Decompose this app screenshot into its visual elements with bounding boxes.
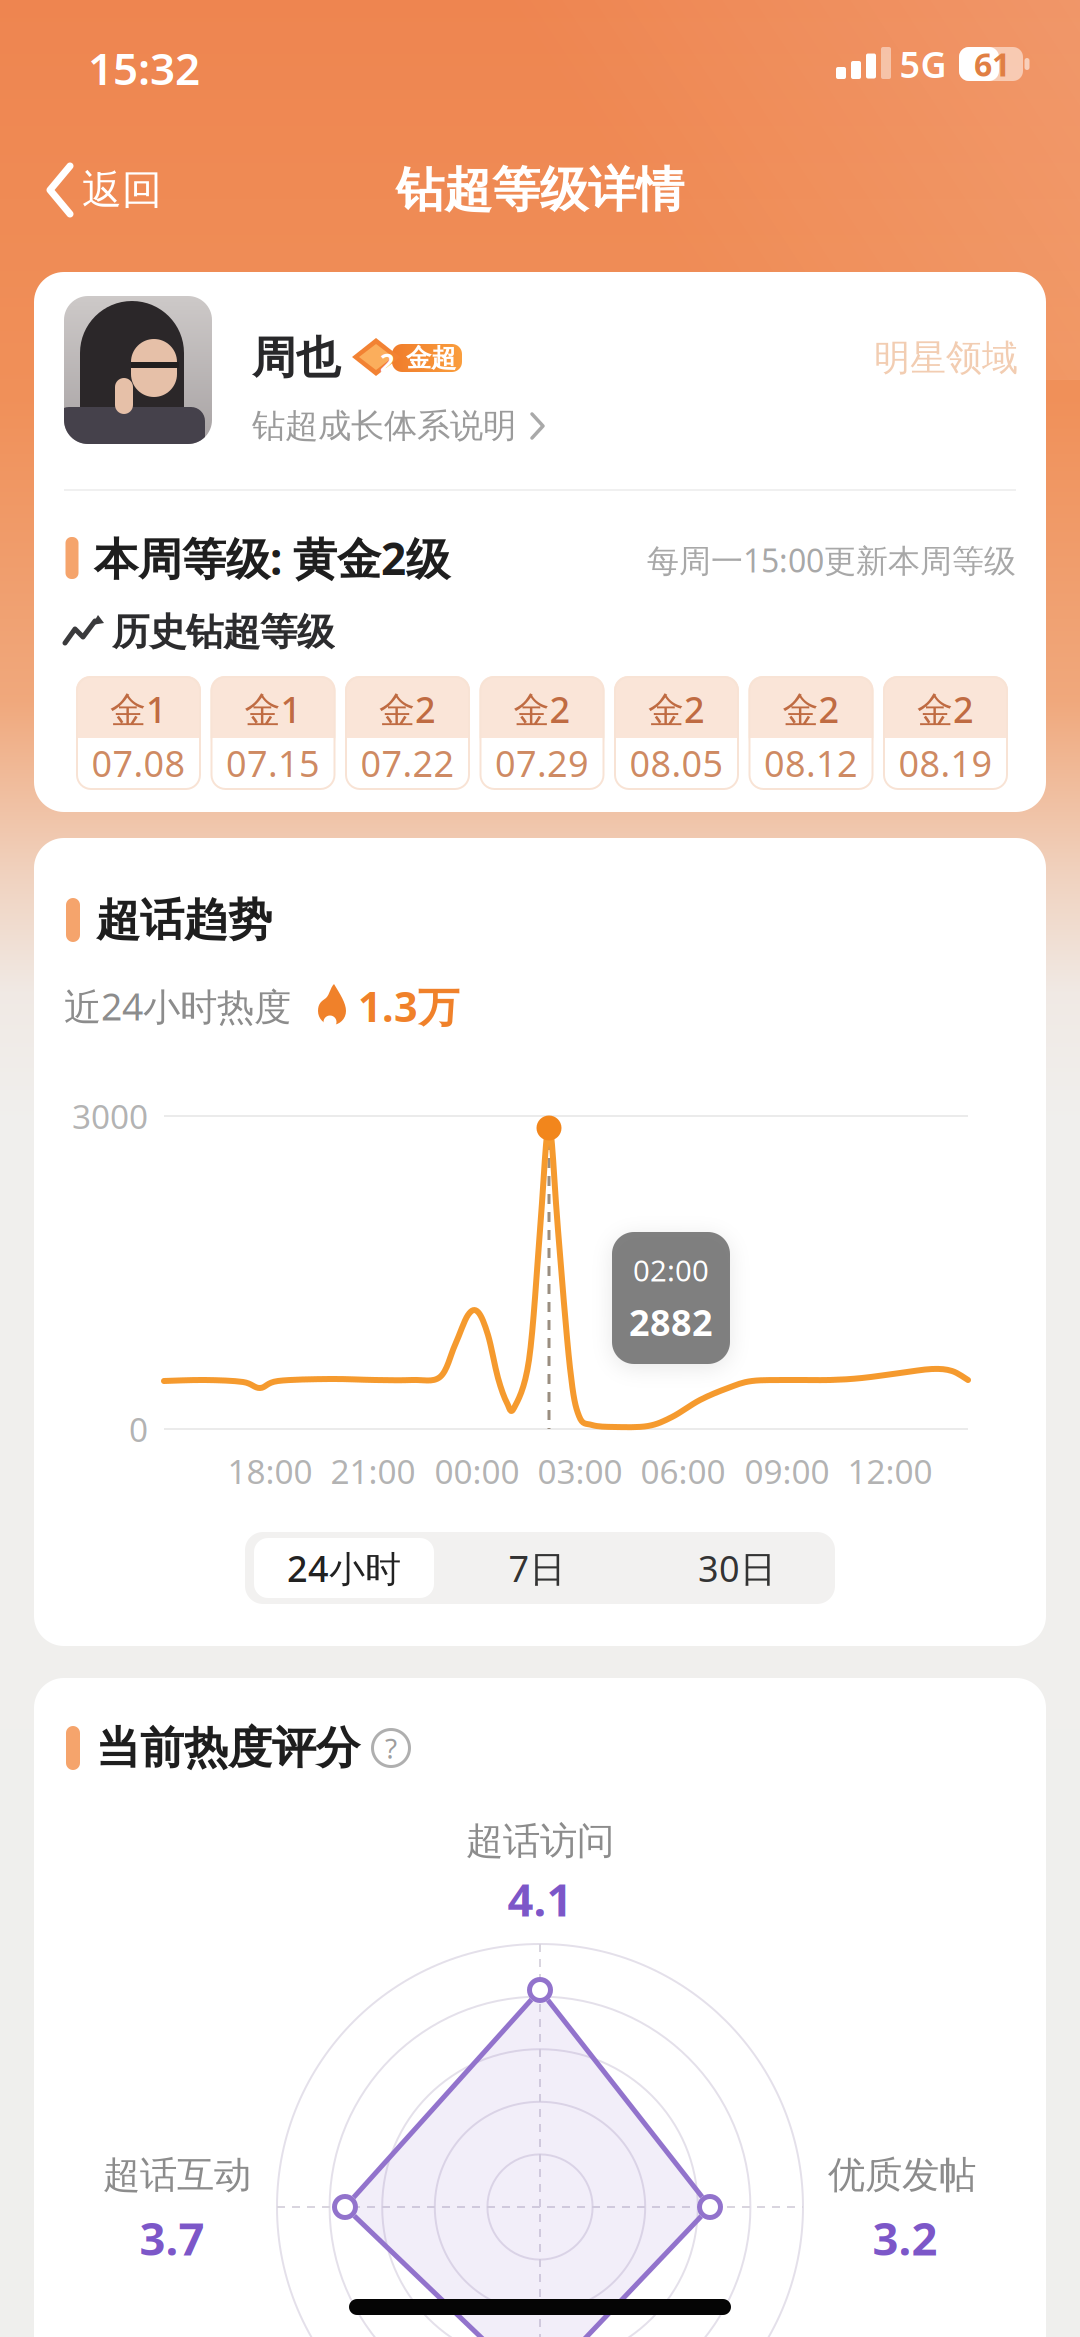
staticText: 金2: [917, 685, 974, 733]
staticText: 近24小时热度: [64, 981, 291, 1031]
staticText: 06:00: [640, 1449, 725, 1493]
staticText: 返回: [82, 165, 162, 214]
staticText: 00:00: [434, 1449, 519, 1493]
staticText: 4.1: [507, 1869, 572, 1929]
staticText: 02:00: [633, 1250, 709, 1289]
staticText: ?: [385, 1729, 397, 1767]
staticText: 3.2: [872, 2208, 937, 2268]
staticText: 每周一15:00更新本周等级: [647, 539, 1016, 581]
staticText: 0: [129, 1407, 148, 1451]
staticText: 明星领域: [874, 336, 1018, 380]
staticText: 金1: [244, 685, 301, 733]
staticText: 当前热度评分: [96, 1721, 360, 1775]
staticText: 钻超等级详情: [396, 160, 684, 219]
staticText: 超话访问: [466, 1818, 614, 1864]
button[interactable]: ?: [371, 1728, 411, 1768]
staticText: 15:32: [88, 39, 200, 97]
staticText: 金1: [110, 685, 167, 733]
staticText: 钻超成长体系说明: [252, 405, 516, 446]
staticText: 07.29: [495, 739, 589, 787]
staticText: 08.05: [629, 739, 723, 787]
staticText: 03:00: [537, 1449, 622, 1493]
staticText: 08.19: [898, 739, 992, 787]
staticText: 历史钻超等级: [112, 609, 334, 655]
staticText: 超话互动: [103, 2152, 251, 2198]
staticText: 3.7: [139, 2208, 204, 2268]
staticText: 07.22: [360, 739, 454, 787]
staticText: 超话趋势: [96, 893, 272, 947]
staticText: 7日: [508, 1544, 565, 1592]
button[interactable]: 7日: [442, 1536, 632, 1600]
staticText: 1.3万: [358, 979, 459, 1033]
staticText: 18:00: [227, 1449, 312, 1493]
button[interactable]: 返回: [40, 160, 180, 220]
staticText: 周也: [252, 331, 340, 385]
staticText: 08.12: [764, 739, 858, 787]
staticText: 30日: [698, 1544, 776, 1592]
staticText: 金2: [782, 685, 839, 733]
staticText: 3000: [72, 1094, 148, 1138]
staticText: 2882: [629, 1298, 713, 1346]
staticText: 金2: [513, 685, 570, 733]
staticText: 21:00: [330, 1449, 415, 1493]
staticText: 61: [974, 43, 1010, 85]
staticText: 金2: [648, 685, 705, 733]
staticText: 07.08: [91, 739, 185, 787]
button[interactable]: 24小时: [254, 1538, 434, 1598]
button[interactable]: 钻超成长体系说明: [252, 399, 554, 453]
staticText: 24小时: [287, 1544, 401, 1592]
staticText: 09:00: [744, 1449, 829, 1493]
staticText: 12:00: [847, 1449, 932, 1493]
staticText: 本周等级: 黄金2级: [94, 529, 450, 587]
staticText: 优质发帖: [828, 2152, 976, 2198]
staticText: 2: [380, 345, 394, 379]
staticText: 金2: [379, 685, 436, 733]
staticText: 金超: [406, 342, 456, 373]
staticText: 07.15: [226, 739, 320, 787]
button[interactable]: 30日: [642, 1536, 832, 1600]
staticText: 5G: [899, 40, 946, 88]
